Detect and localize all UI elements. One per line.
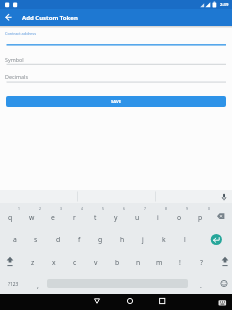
staticText: 4 [81,206,83,211]
staticText: 5 [102,206,104,211]
staticText: y [114,213,118,222]
staticText: k [162,235,166,244]
staticText: Symbol [5,56,24,63]
staticText: d [56,235,61,244]
staticText: 8 [165,206,167,211]
button[interactable]: SAVE [6,96,226,107]
staticText: 7 [144,206,146,211]
staticText: m [156,258,163,267]
staticText: Contract address [5,31,37,36]
button[interactable] [2,10,16,25]
staticText: v [94,258,98,267]
staticText: p [198,213,203,222]
staticText: ?123 [8,281,19,288]
staticText: 0 [208,206,210,211]
staticText: Decimals [5,73,28,80]
staticText: 6 [123,206,125,211]
staticText: 2:39 [220,2,229,8]
button[interactable] [205,228,227,249]
staticText: z [31,258,35,267]
staticText: o [177,213,182,222]
staticText: ? [200,258,203,267]
staticText: 2 [39,206,41,211]
staticText: 9 [186,206,188,211]
staticText: b [115,258,120,267]
staticText: w [29,213,35,222]
staticText: u [135,213,140,222]
staticText: r [73,213,76,222]
button[interactable] [120,294,140,310]
staticText: n [136,258,141,267]
staticText: j [142,235,144,244]
staticText: 1 [18,206,20,211]
staticText: ! [179,258,181,267]
staticText: q [8,213,13,222]
staticText: a [13,235,17,244]
staticText: h [120,235,125,244]
staticText: i [157,213,159,222]
staticText: l [184,235,186,244]
staticText: c [73,258,77,267]
button[interactable] [152,294,172,310]
staticText: x [52,258,56,267]
staticText: f [78,235,81,244]
staticText: , [37,281,39,290]
staticText: 3 [60,206,62,211]
staticText: e [51,213,55,222]
button[interactable] [211,205,232,226]
staticText: SAVE [111,99,122,105]
staticText: g [98,235,103,244]
staticText: t [94,213,97,222]
button[interactable] [87,294,107,310]
staticText: . [200,281,202,290]
staticText: s [34,235,38,244]
staticText: Add Custom Token [22,14,78,22]
